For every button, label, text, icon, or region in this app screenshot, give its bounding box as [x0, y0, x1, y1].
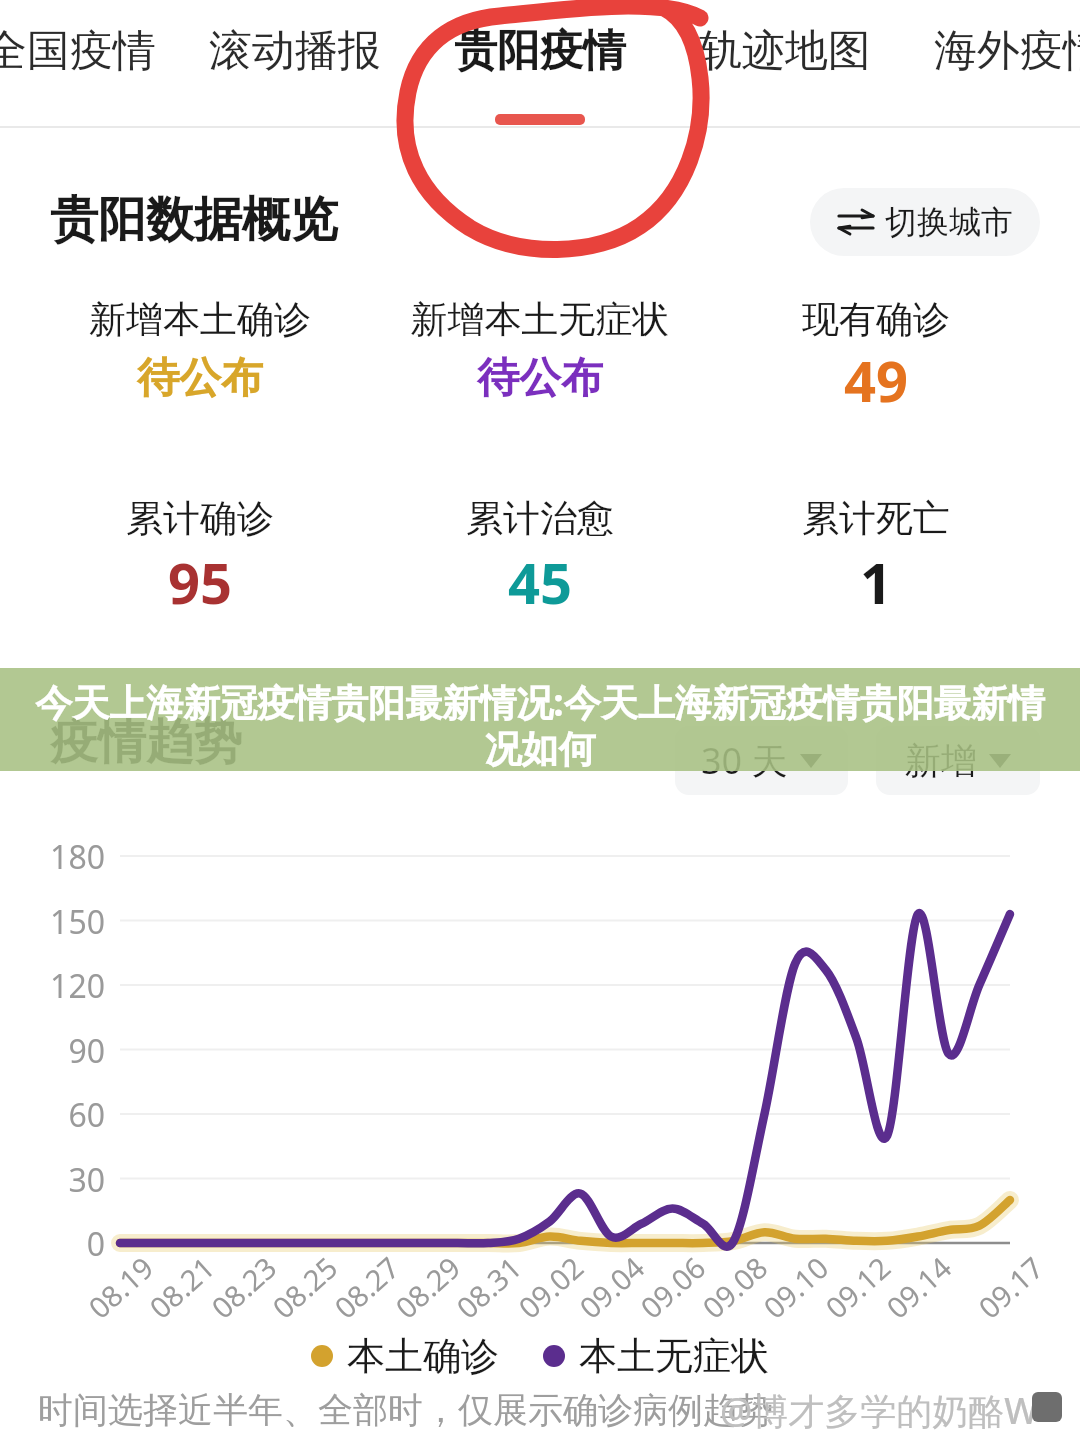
staticText: 09.02 — [509, 1248, 591, 1327]
staticText: 30 — [0, 1158, 105, 1202]
staticText: 09.17 — [969, 1248, 1051, 1327]
staticText: 新增 — [905, 738, 977, 783]
staticText: 今天上海新冠疫情贵阳最新情况:今天上海新冠疫情贵阳最新情况如何 — [30, 676, 1050, 773]
staticText: 08.29 — [386, 1248, 468, 1327]
staticText: 09.06 — [631, 1248, 713, 1327]
staticText: 累计确诊 — [30, 495, 370, 542]
staticText: 08.31 — [447, 1248, 529, 1327]
staticText: 180 — [0, 835, 105, 879]
staticText: 30 天 — [701, 736, 788, 785]
staticText: 09.10 — [754, 1248, 836, 1327]
staticText: 滚动播报 — [209, 24, 381, 78]
staticText: 疫情趋势 — [50, 712, 242, 772]
staticText: 海外疫情 — [934, 24, 1080, 78]
staticText: 切换城市 — [885, 202, 1013, 242]
button[interactable]: 轨迹地图 — [665, 24, 905, 124]
staticText: 轨迹地图 — [699, 24, 871, 78]
staticText: 90 — [0, 1029, 105, 1073]
staticText: 60 — [0, 1093, 105, 1137]
staticText: 08.25 — [263, 1248, 345, 1327]
staticText: 本土无症状 — [579, 1332, 769, 1380]
staticText: @博才多学的奶酪W — [720, 1386, 1039, 1435]
staticText: 累计治愈 — [370, 495, 710, 542]
staticText: 09.04 — [570, 1248, 652, 1327]
button[interactable]: 滚动播报 — [175, 24, 415, 124]
staticText: 120 — [0, 964, 105, 1008]
staticText: 0 — [0, 1222, 105, 1266]
staticText: 待公布 — [30, 352, 370, 405]
staticText: 09.08 — [693, 1248, 775, 1327]
staticText: 贵阳疫情 — [454, 24, 626, 78]
staticText: 08.27 — [325, 1248, 407, 1327]
staticText: 1 — [706, 544, 1046, 620]
staticText: 45 — [370, 544, 710, 620]
staticText: 待公布 — [370, 352, 710, 405]
button[interactable]: 全国疫情 — [0, 24, 190, 124]
staticText: 95 — [30, 544, 370, 620]
staticText: 49 — [706, 342, 1046, 418]
staticText: 全国疫情 — [0, 24, 156, 78]
button[interactable]: 新增 — [876, 726, 1040, 795]
staticText: 贵阳数据概览 — [50, 190, 338, 250]
staticText: 本土确诊 — [347, 1332, 499, 1380]
staticText: 08.21 — [140, 1248, 222, 1327]
staticText: 新增本土确诊 — [0, 296, 400, 343]
staticText: 09.12 — [816, 1248, 898, 1327]
staticText: 累计死亡 — [706, 495, 1046, 542]
staticText: 08.23 — [202, 1248, 284, 1327]
staticText: 150 — [0, 900, 105, 944]
staticText: 08.19 — [79, 1248, 161, 1327]
button[interactable]: 切换城市 — [810, 188, 1040, 256]
staticText: 新增本土无症状 — [330, 296, 750, 343]
button[interactable]: 海外疫情 — [900, 24, 1080, 124]
button[interactable]: 贵阳疫情 — [420, 24, 660, 124]
button[interactable]: 本土确诊 — [311, 1332, 499, 1380]
button[interactable]: 本土无症状 — [543, 1332, 769, 1380]
staticText: 09.14 — [877, 1248, 959, 1327]
button[interactable]: 30 天 — [675, 726, 848, 795]
staticText: 现有确诊 — [706, 296, 1046, 343]
staticText: 时间选择近半年、全部时，仅展示确诊病例趋势 — [38, 1388, 773, 1432]
